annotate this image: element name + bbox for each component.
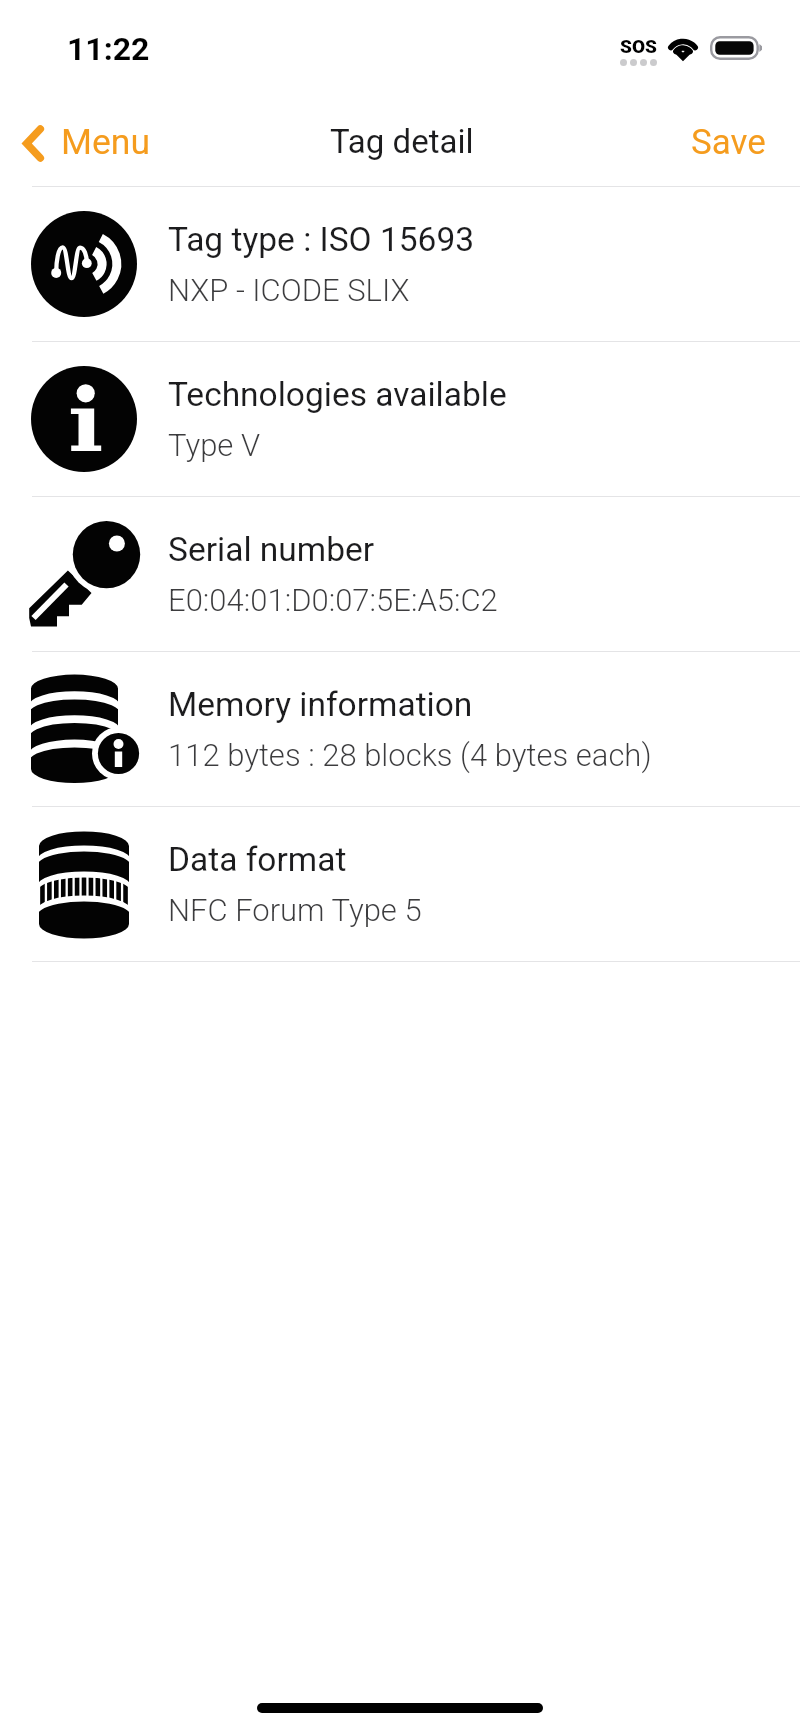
button[interactable]: Technologies available <box>0 342 800 496</box>
staticText: Tag detail <box>330 122 474 161</box>
staticText: Save <box>691 122 766 163</box>
staticText: SOS <box>620 35 657 57</box>
staticText: Menu <box>61 121 150 163</box>
staticText: NFC Forum Type 5 <box>168 892 422 928</box>
staticText: Technologies available <box>168 375 507 414</box>
button[interactable]: Tag type : ISO 15693 <box>0 187 800 341</box>
staticText: Serial number <box>168 530 375 569</box>
button[interactable]: Save <box>667 108 800 177</box>
staticText: NXP - ICODE SLIX <box>168 272 410 308</box>
button[interactable]: Data format <box>0 807 800 961</box>
staticText: 112 bytes : 28 blocks (4 bytes each) <box>168 737 652 773</box>
staticText: Tag type : ISO 15693 <box>168 220 475 259</box>
staticText: 11:22 <box>67 30 150 68</box>
button[interactable]: Menu <box>13 114 164 172</box>
staticText: Data format <box>168 840 347 879</box>
staticText: E0:04:01:D0:07:5E:A5:C2 <box>168 582 498 618</box>
button[interactable]: Memory information <box>0 652 800 806</box>
staticText: Type V <box>168 427 261 463</box>
button[interactable]: Serial number <box>0 497 800 651</box>
staticText: Memory information <box>168 685 473 724</box>
